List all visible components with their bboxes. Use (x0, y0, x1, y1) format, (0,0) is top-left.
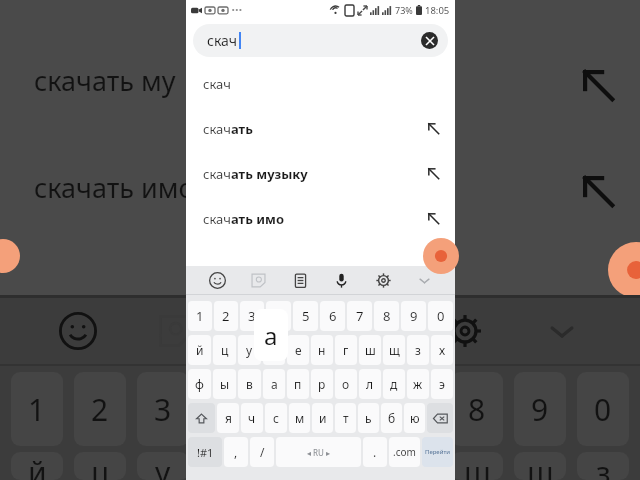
button[interactable]: я (217, 403, 239, 433)
button[interactable]: и (312, 403, 333, 433)
button[interactable]: у (238, 335, 261, 365)
staticText: !#1 (197, 445, 214, 460)
staticText: 8 (383, 307, 391, 325)
button[interactable]: Go (422, 437, 453, 467)
button[interactable]: Space, RU (276, 437, 361, 467)
staticText: к (218, 452, 234, 480)
button[interactable]: Collapse (407, 267, 441, 293)
button[interactable]: 5 (293, 301, 318, 331)
button[interactable]: / (250, 437, 274, 467)
staticText: 7 (405, 389, 423, 430)
staticText: я (225, 410, 232, 426)
button[interactable]: о (335, 369, 357, 399)
button[interactable]: г (335, 335, 357, 365)
button[interactable]: в (238, 369, 261, 399)
button[interactable]: л (359, 369, 381, 399)
staticText: скачать имо (34, 169, 195, 206)
staticText: 1 (196, 307, 204, 325)
button[interactable]: м (289, 403, 310, 433)
button[interactable]: 2 (214, 301, 238, 331)
button[interactable]: р (311, 369, 333, 399)
staticText: скач (207, 31, 238, 50)
staticText: г (407, 452, 421, 480)
button[interactable]: з (407, 335, 429, 365)
staticText: у (246, 342, 253, 358)
button[interactable]: к (263, 335, 285, 365)
button[interactable]: . (363, 437, 387, 467)
staticText: скач (203, 120, 231, 138)
button[interactable]: ф (188, 369, 211, 399)
staticText: . (373, 444, 377, 460)
button[interactable]: ю (404, 403, 425, 433)
staticText: 3 (154, 389, 172, 430)
button[interactable]: х (431, 335, 453, 365)
button[interactable]: скач (186, 151, 455, 196)
button[interactable]: 9 (401, 301, 426, 331)
staticText: ф (195, 376, 204, 392)
button[interactable]: !#1 (188, 437, 222, 467)
button[interactable]: 3 (240, 301, 264, 331)
staticText: 0 (437, 307, 445, 325)
button[interactable]: 8 (374, 301, 399, 331)
button[interactable]: .com (389, 437, 420, 467)
button[interactable]: Backspace (427, 403, 453, 433)
button[interactable]: , (224, 437, 248, 467)
staticText: ю (410, 410, 420, 426)
button[interactable]: Action (423, 238, 459, 274)
button[interactable]: Clipboard (283, 267, 317, 293)
button[interactable]: т (335, 403, 356, 433)
staticText: в (246, 376, 253, 392)
button[interactable]: п (287, 369, 309, 399)
button[interactable]: щ (383, 335, 405, 365)
button[interactable]: ж (407, 369, 429, 399)
button[interactable]: скач (186, 106, 455, 151)
staticText: г (343, 342, 349, 358)
button[interactable]: й (188, 335, 211, 365)
button[interactable]: д (383, 369, 405, 399)
button[interactable]: э (431, 369, 453, 399)
staticText: ч (248, 410, 256, 426)
button[interactable]: 7 (347, 301, 372, 331)
button[interactable]: Voice input (324, 267, 358, 293)
button[interactable]: Shift (188, 403, 215, 433)
button[interactable]: ш (359, 335, 381, 365)
button[interactable]: с (265, 403, 287, 433)
button[interactable]: е (287, 335, 309, 365)
staticText: 3 (248, 307, 256, 325)
button[interactable]: б (381, 403, 402, 433)
button[interactable]: скач (186, 61, 455, 106)
staticText: а (271, 376, 278, 392)
staticText: е (281, 452, 298, 480)
button[interactable]: скач (186, 196, 455, 241)
staticText: 5 (302, 307, 310, 325)
staticText: д (390, 376, 398, 392)
button[interactable]: ь (358, 403, 379, 433)
staticText: з (596, 452, 611, 480)
staticText: 7 (356, 307, 364, 325)
button[interactable]: скач (193, 24, 448, 57)
button[interactable]: Emoji (200, 267, 234, 293)
button[interactable]: н (311, 335, 333, 365)
staticText: ать музыку (231, 165, 308, 183)
button[interactable]: ч (241, 403, 263, 433)
staticText: т (343, 410, 349, 426)
staticText: н (318, 342, 326, 358)
staticText: 18:05 (425, 4, 450, 17)
button[interactable]: 0 (428, 301, 453, 331)
staticText: ать (231, 120, 253, 138)
button[interactable]: 6 (320, 301, 345, 331)
button[interactable]: ы (213, 369, 236, 399)
button[interactable]: Stickers (241, 267, 275, 293)
button[interactable]: Settings (366, 267, 400, 293)
staticText: ать имо (231, 210, 284, 228)
staticText: ы (220, 376, 230, 392)
staticText: й (196, 342, 204, 358)
button[interactable]: 1 (188, 301, 212, 331)
staticText: скач (203, 75, 231, 93)
staticText: 6 (342, 389, 360, 430)
button[interactable]: 4 (266, 301, 291, 331)
button[interactable]: ц (213, 335, 236, 365)
button[interactable]: Clear (421, 32, 438, 49)
staticText: ш (464, 452, 491, 480)
button[interactable]: а (263, 369, 285, 399)
